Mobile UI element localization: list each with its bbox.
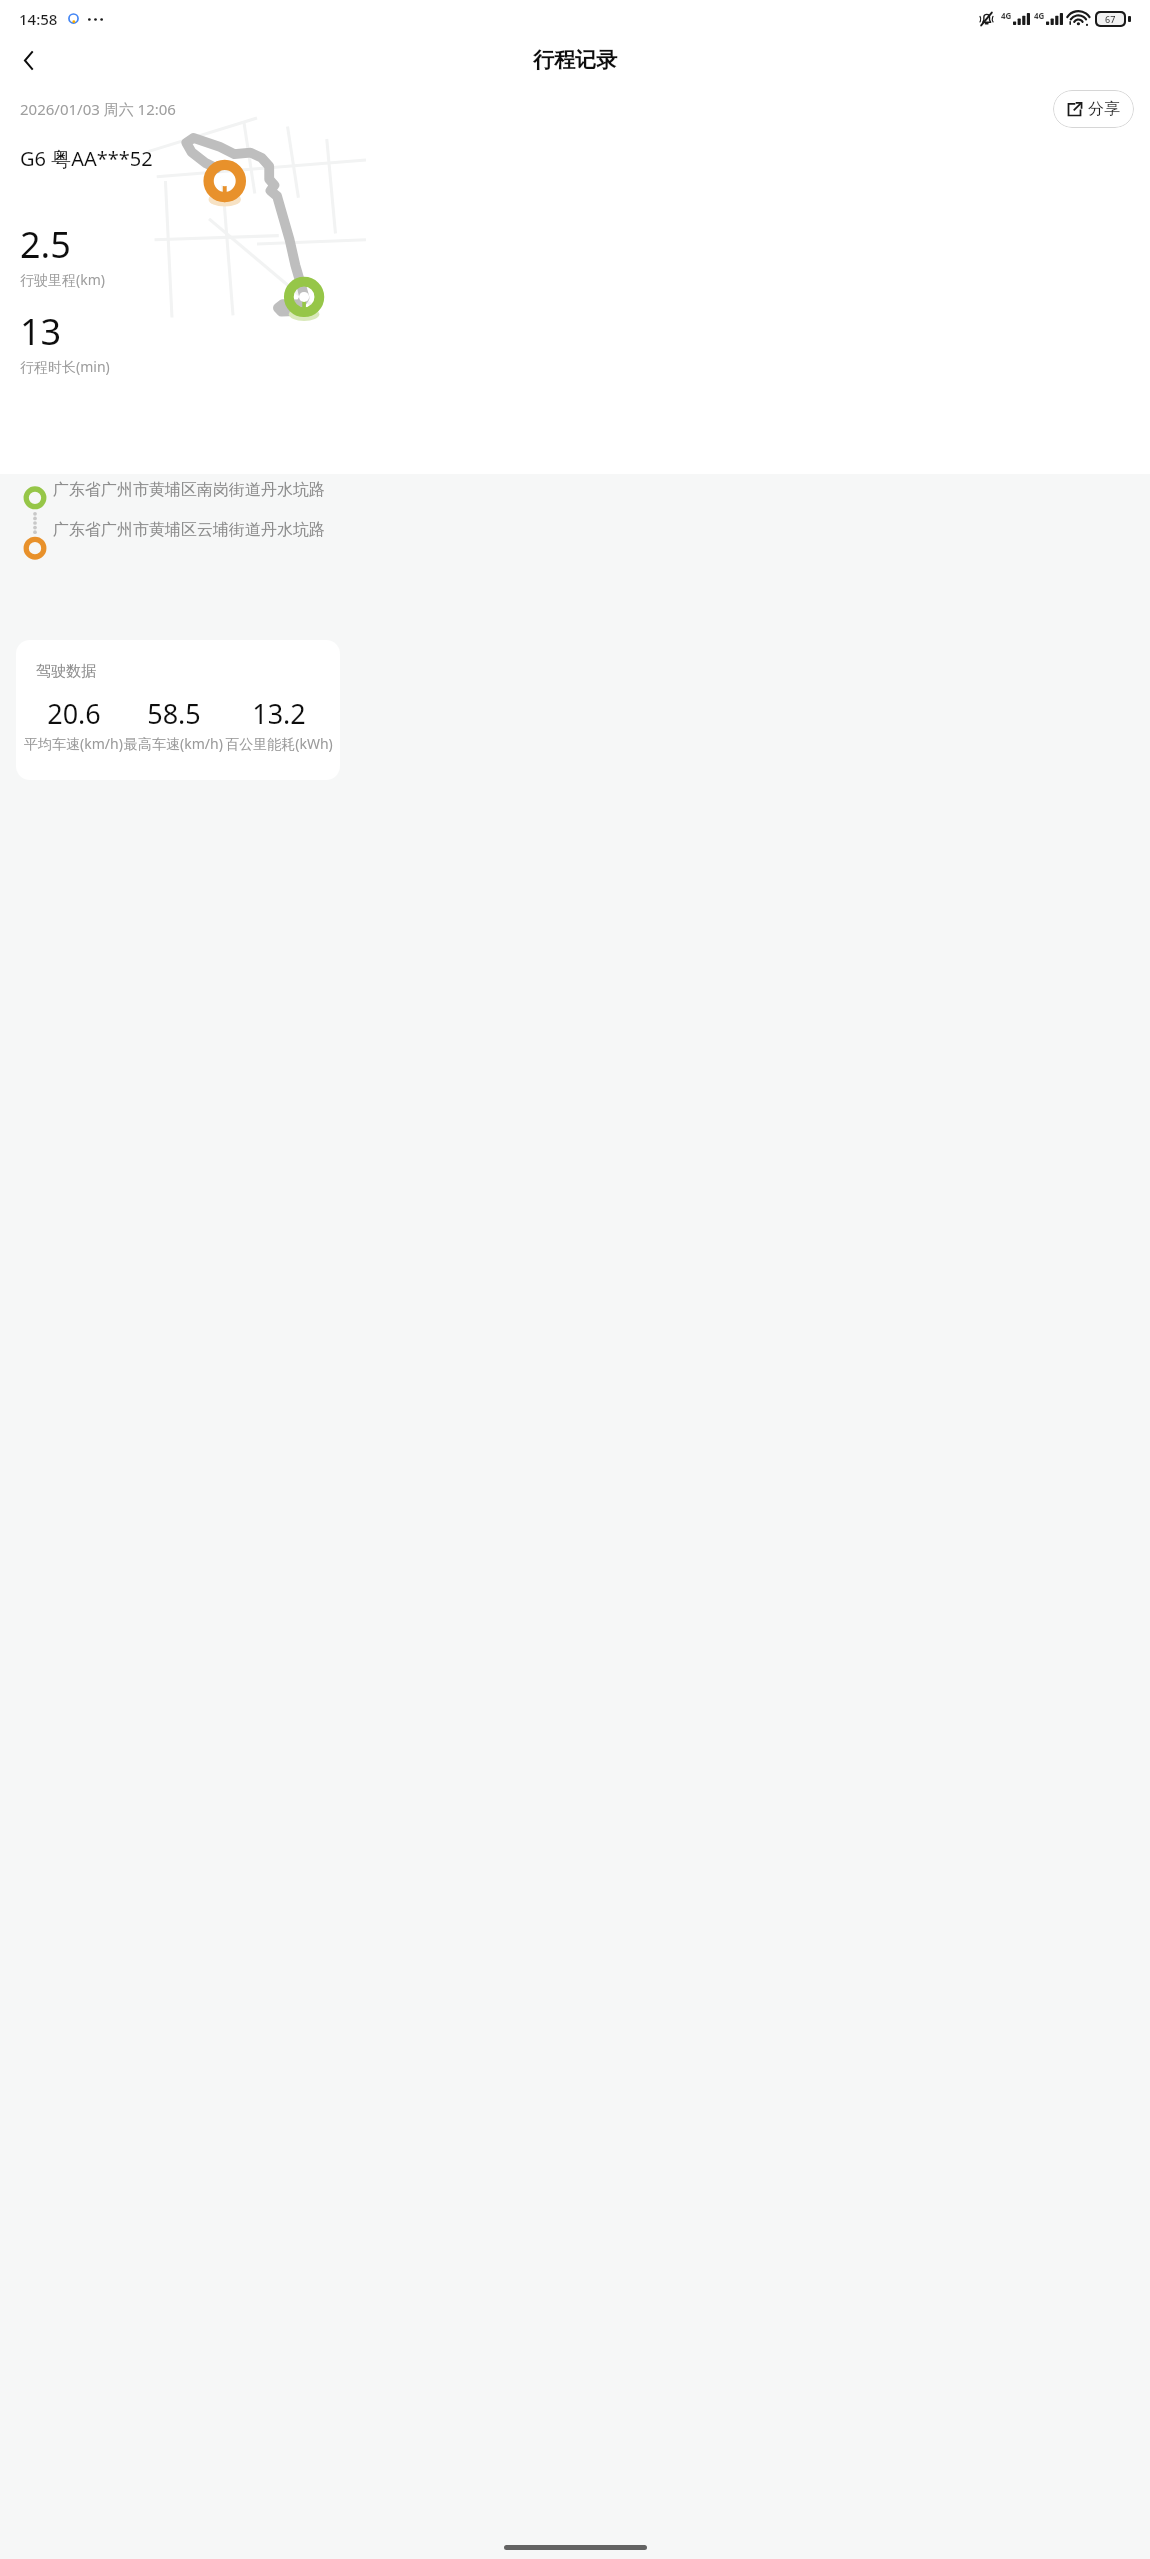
button[interactable]: Back	[4, 35, 54, 85]
staticText: 行驶里程(km)	[20, 270, 105, 289]
staticText: 最高车速(km/h)	[124, 734, 223, 753]
staticText: G6 粤AA***52	[20, 145, 153, 172]
button[interactable]: 驾驶数据	[16, 640, 340, 780]
staticText: 行程记录	[533, 47, 617, 73]
staticText: 20.6	[47, 695, 101, 732]
staticText: 13.2	[252, 695, 306, 732]
staticText: 平均车速(km/h)	[24, 734, 123, 753]
staticText: 2026/01/03 周六 12:06	[20, 99, 176, 119]
staticText: 百公里能耗(kWh)	[225, 734, 333, 753]
staticText: 驾驶数据	[36, 662, 96, 681]
staticText: 2.5	[20, 220, 71, 269]
button[interactable]: 分享	[1053, 90, 1134, 128]
staticText: 4G	[1001, 10, 1012, 21]
staticText: 58.5	[147, 695, 201, 732]
staticText: 4G	[1034, 10, 1045, 21]
staticText: 13	[20, 307, 62, 356]
staticText: 广东省广州市黄埔区南岗街道丹水坑路	[53, 480, 325, 500]
staticText: 行程时长(min)	[20, 357, 110, 376]
staticText: 分享	[1088, 99, 1120, 119]
staticText: 广东省广州市黄埔区云埔街道丹水坑路	[53, 520, 325, 540]
staticText: 67	[1105, 13, 1116, 25]
staticText: 14:58	[19, 9, 58, 29]
